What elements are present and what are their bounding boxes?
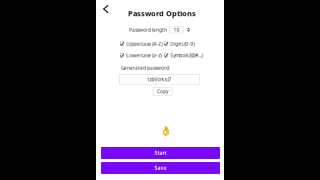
staticText: Digits (0-9) [170, 40, 194, 47]
button[interactable]: Uppercase (A-Z) [120, 40, 162, 47]
button[interactable]: Save [101, 162, 220, 174]
staticText: 👌 [160, 125, 172, 136]
staticText: Start [154, 150, 166, 156]
button[interactable]: Copy [153, 87, 172, 95]
button[interactable]: Back [101, 3, 111, 15]
staticText: Uppercase (A-Z) [126, 40, 162, 47]
staticText: 10 [173, 26, 179, 33]
button[interactable]: Password length stepper [186, 26, 191, 33]
staticText: tzbVcrkxJ7 [147, 76, 171, 83]
staticText: Save [154, 165, 166, 171]
button[interactable]: Lowercase (a-z) [120, 52, 161, 58]
button[interactable]: Symbols (!@#...) [164, 52, 202, 58]
staticText: Password length [129, 26, 167, 33]
staticText: Generated password: [121, 64, 170, 71]
staticText: Password Options [128, 8, 196, 18]
staticText: Copy [157, 88, 168, 95]
button[interactable]: Start [101, 147, 220, 159]
staticText: Symbols (!@#...) [170, 52, 202, 58]
button[interactable]: Digits (0-9) [164, 40, 194, 47]
staticText: Lowercase (a-z) [126, 52, 161, 58]
